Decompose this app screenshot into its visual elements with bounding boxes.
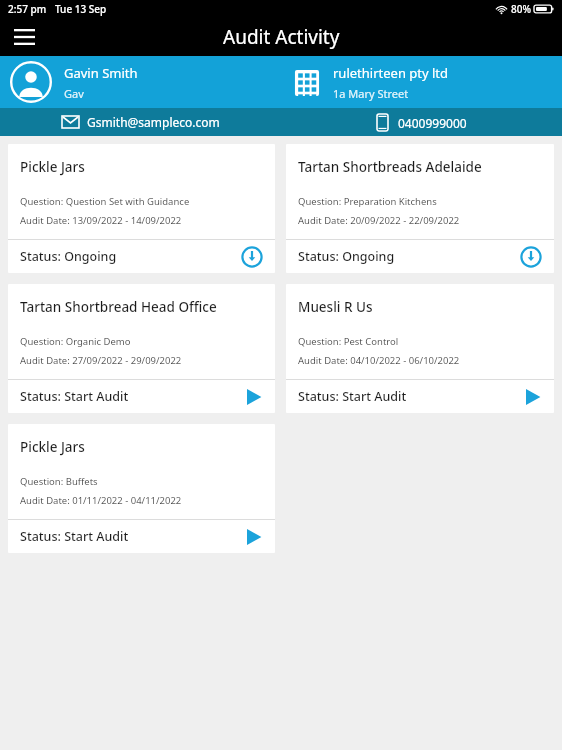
staticText: Pickle Jars <box>20 438 85 456</box>
staticText: Tue 13 Sep <box>55 2 107 16</box>
staticText: Status: Start Audit <box>20 388 129 405</box>
staticText: Audit Activity <box>223 24 340 50</box>
staticText: Question: Organic Demo <box>20 335 131 348</box>
staticText: Gav <box>64 86 84 101</box>
staticText: Gavin Smith <box>64 64 138 82</box>
staticText: Question: Preparation Kitchens <box>298 195 437 208</box>
staticText: Question: Pest Control <box>298 335 399 348</box>
other: Start audit <box>243 527 263 547</box>
staticText: 80% <box>511 2 531 16</box>
staticText: Status: Ongoing <box>20 248 117 265</box>
staticText: Status: Start Audit <box>20 528 129 545</box>
staticText: 1a Mary Street <box>333 86 409 101</box>
button[interactable]: rulethirteen pty ltd <box>281 64 562 101</box>
button[interactable]: Gavin Smith <box>0 61 281 103</box>
staticText: Audit Date: 01/11/2022 - 04/11/2022 <box>20 494 182 507</box>
other: Start audit <box>243 387 263 407</box>
button[interactable]: 0400999000 <box>281 114 562 131</box>
staticText: Status: Ongoing <box>298 248 395 265</box>
button[interactable]: Tartan Shortbread Head Office <box>8 284 275 413</box>
staticText: Tartan Shortbreads Adelaide <box>298 158 482 176</box>
other: Ongoing audit <box>241 246 263 268</box>
button[interactable]: Pickle Jars <box>8 144 275 273</box>
staticText: Audit Date: 13/09/2022 - 14/09/2022 <box>20 214 182 227</box>
staticText: Status: Start Audit <box>298 388 407 405</box>
button[interactable]: Gsmith@sampleco.com <box>0 114 281 130</box>
staticText: 0400999000 <box>398 115 467 131</box>
other: Ongoing audit <box>520 246 542 268</box>
staticText: Audit Date: 20/09/2022 - 22/09/2022 <box>298 214 460 227</box>
staticText: Question: Question Set with Guidance <box>20 195 190 208</box>
button[interactable]: Pickle Jars <box>8 424 275 553</box>
button[interactable]: Tartan Shortbreads Adelaide <box>286 144 554 273</box>
staticText: Gsmith@sampleco.com <box>87 114 220 130</box>
staticText: rulethirteen pty ltd <box>333 64 449 82</box>
staticText: Question: Buffets <box>20 475 98 488</box>
staticText: 2:57 pm <box>8 2 47 16</box>
other: Start audit <box>522 387 542 407</box>
staticText: Pickle Jars <box>20 158 85 176</box>
staticText: Audit Date: 04/10/2022 - 06/10/2022 <box>298 354 460 367</box>
staticText: Tartan Shortbread Head Office <box>20 298 217 316</box>
staticText: Audit Date: 27/09/2022 - 29/09/2022 <box>20 354 182 367</box>
button[interactable]: Muesli R Us <box>286 284 554 413</box>
staticText: Muesli R Us <box>298 298 373 316</box>
button[interactable]: Open navigation menu <box>0 18 48 56</box>
